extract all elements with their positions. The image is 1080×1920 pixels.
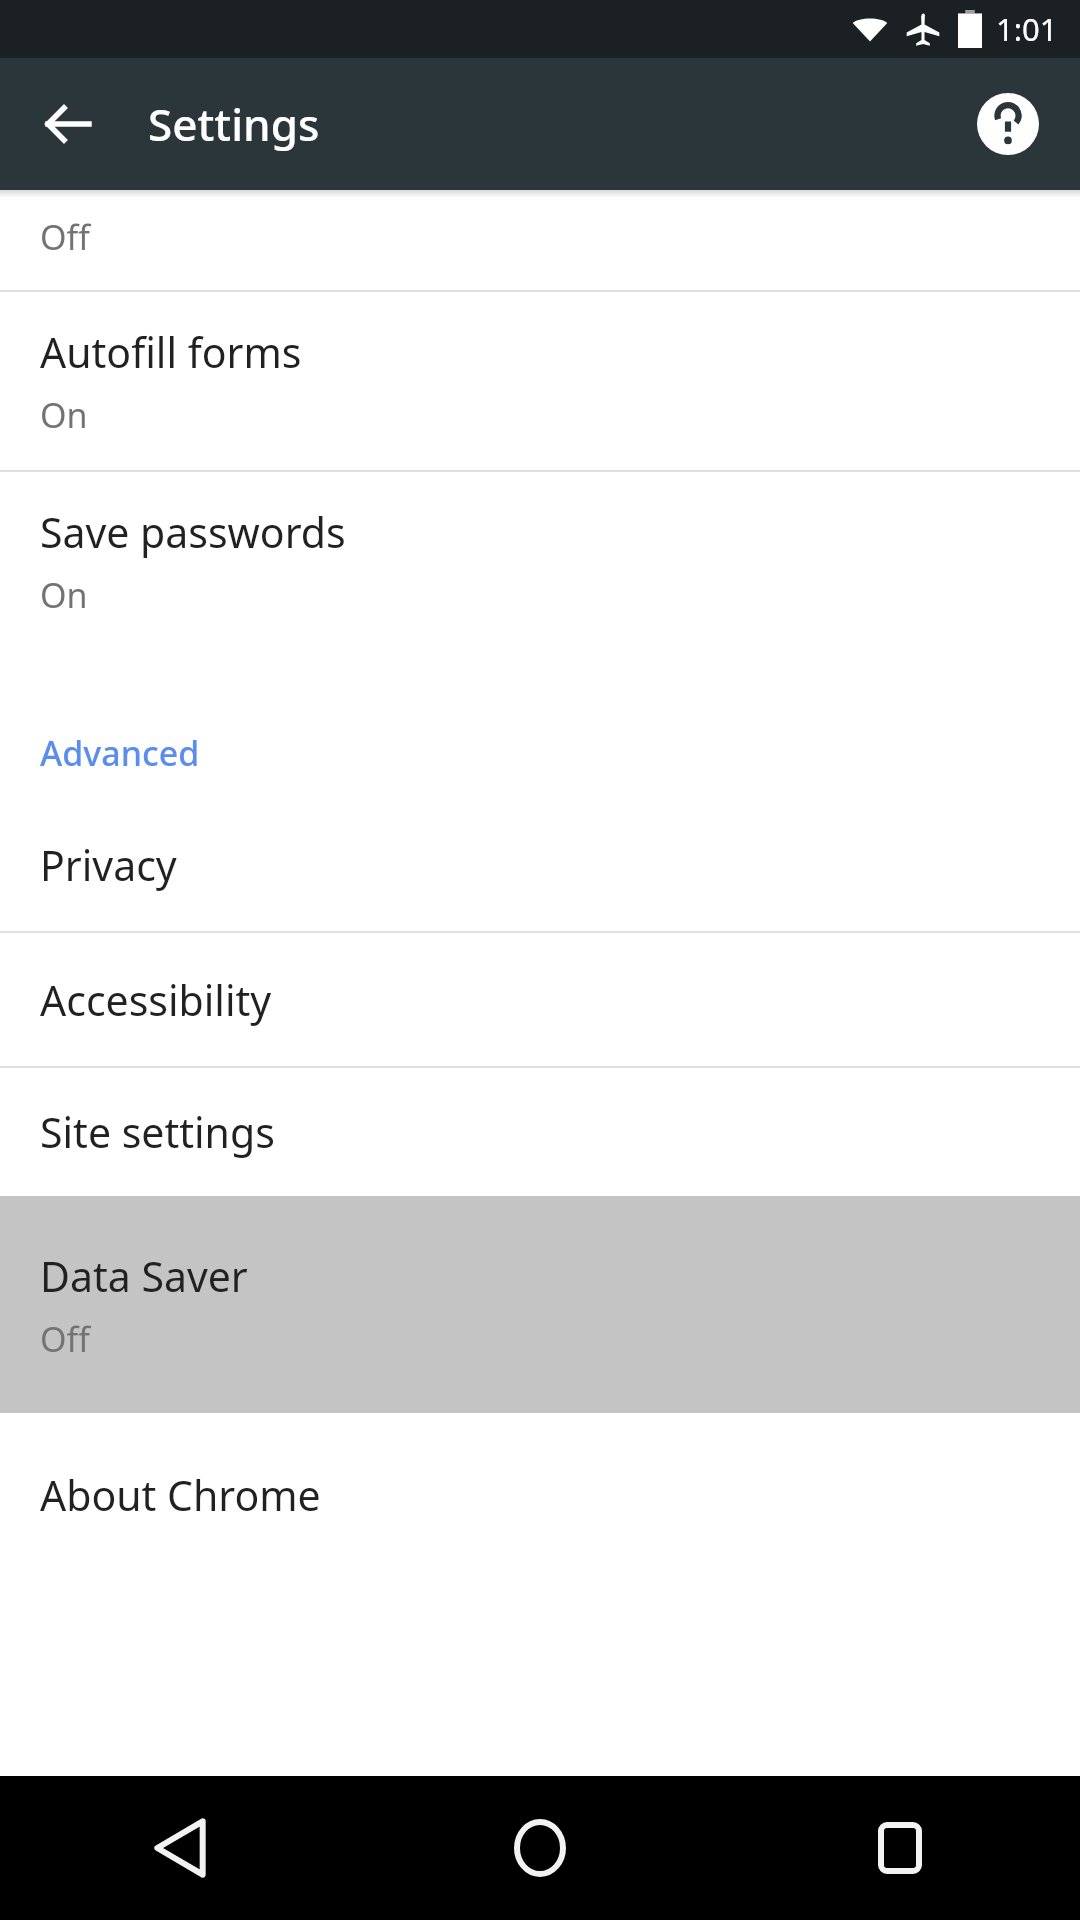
button[interactable]: Recent apps (720, 1776, 1080, 1920)
button[interactable]: Save passwords (0, 472, 1080, 650)
staticText: Advanced (40, 730, 200, 776)
button[interactable]: Help (966, 82, 1050, 166)
button[interactable]: Back (28, 84, 108, 164)
staticText: Save passwords (40, 504, 346, 560)
staticText: Site settings (40, 1104, 275, 1160)
button[interactable]: Accessibility (0, 933, 1080, 1066)
button[interactable]: Site settings (0, 1068, 1080, 1196)
button[interactable]: Off (0, 198, 1080, 290)
staticText: Privacy (40, 837, 177, 893)
button[interactable]: Autofill forms (0, 292, 1080, 470)
staticText: Accessibility (40, 972, 272, 1028)
staticText: 1:01 (996, 8, 1058, 50)
button[interactable]: About Chrome (0, 1413, 1080, 1577)
staticText: On (40, 572, 88, 618)
button[interactable]: Back (0, 1776, 360, 1920)
button[interactable]: Data Saver (0, 1196, 1080, 1413)
staticText: About Chrome (40, 1467, 321, 1523)
staticText: On (40, 392, 88, 438)
button[interactable]: Privacy (0, 798, 1080, 931)
staticText: Settings (148, 94, 320, 154)
staticText: Off (40, 1316, 90, 1362)
staticText: Data Saver (40, 1248, 248, 1304)
button[interactable]: Home (360, 1776, 720, 1920)
staticText: Off (40, 214, 90, 260)
staticText: Autofill forms (40, 324, 302, 380)
